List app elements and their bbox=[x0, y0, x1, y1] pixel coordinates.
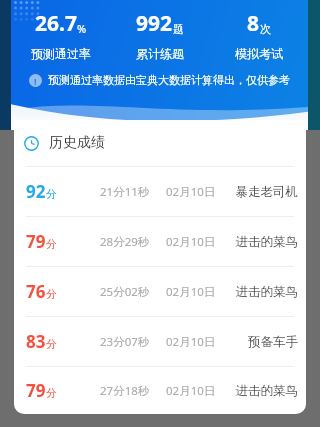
staticText: 分 bbox=[46, 187, 57, 201]
staticText: 进击的菜鸟 bbox=[224, 284, 298, 300]
staticText: 27分18秒 bbox=[100, 383, 166, 399]
staticText: 8 bbox=[247, 9, 260, 38]
staticText: 分 bbox=[46, 386, 57, 400]
staticText: 预测通过率数据由宝典大数据计算得出，仅供参考 bbox=[48, 73, 290, 87]
staticText: 21分11秒 bbox=[100, 184, 166, 200]
staticText: 预备车手 bbox=[224, 334, 298, 350]
staticText: 92 bbox=[26, 180, 46, 203]
staticText: 模拟考试 bbox=[235, 46, 283, 61]
button[interactable]: 8 bbox=[209, 9, 308, 61]
staticText: 累计练题 bbox=[136, 46, 184, 61]
button[interactable]: 992 bbox=[110, 9, 209, 61]
button[interactable]: 79 bbox=[14, 367, 306, 414]
staticText: 次 bbox=[260, 22, 271, 36]
staticText: 分 bbox=[46, 337, 57, 351]
staticText: 题 bbox=[173, 22, 184, 36]
staticText: 76 bbox=[26, 280, 46, 303]
button[interactable]: 26.7 bbox=[11, 9, 110, 61]
staticText: 02月10日 bbox=[166, 284, 224, 300]
staticText: 分 bbox=[46, 287, 57, 301]
staticText: 02月10日 bbox=[166, 234, 224, 250]
button[interactable]: History bbox=[14, 120, 306, 166]
staticText: 25分02秒 bbox=[100, 284, 166, 300]
other: History bbox=[24, 136, 39, 151]
staticText: 83 bbox=[26, 330, 46, 353]
button[interactable]: 79 bbox=[14, 217, 306, 266]
staticText: 02月10日 bbox=[166, 334, 224, 350]
staticText: ! bbox=[34, 75, 37, 87]
staticText: 992 bbox=[136, 9, 173, 38]
staticText: 进击的菜鸟 bbox=[224, 383, 298, 399]
button[interactable]: 76 bbox=[14, 267, 306, 316]
staticText: % bbox=[77, 21, 87, 36]
button[interactable]: 92 bbox=[14, 167, 306, 216]
button[interactable]: 83 bbox=[14, 317, 306, 366]
staticText: 预测通过率 bbox=[31, 46, 91, 61]
staticText: 23分07秒 bbox=[100, 334, 166, 350]
staticText: 26.7 bbox=[35, 9, 77, 38]
staticText: 02月10日 bbox=[166, 383, 224, 399]
staticText: 02月10日 bbox=[166, 184, 224, 200]
staticText: 进击的菜鸟 bbox=[224, 234, 298, 250]
staticText: 历史成绩 bbox=[49, 134, 105, 152]
staticText: 79 bbox=[26, 230, 46, 253]
staticText: 暴走老司机 bbox=[224, 184, 298, 200]
staticText: 28分29秒 bbox=[100, 234, 166, 250]
staticText: 79 bbox=[26, 379, 46, 402]
staticText: 分 bbox=[46, 237, 57, 251]
